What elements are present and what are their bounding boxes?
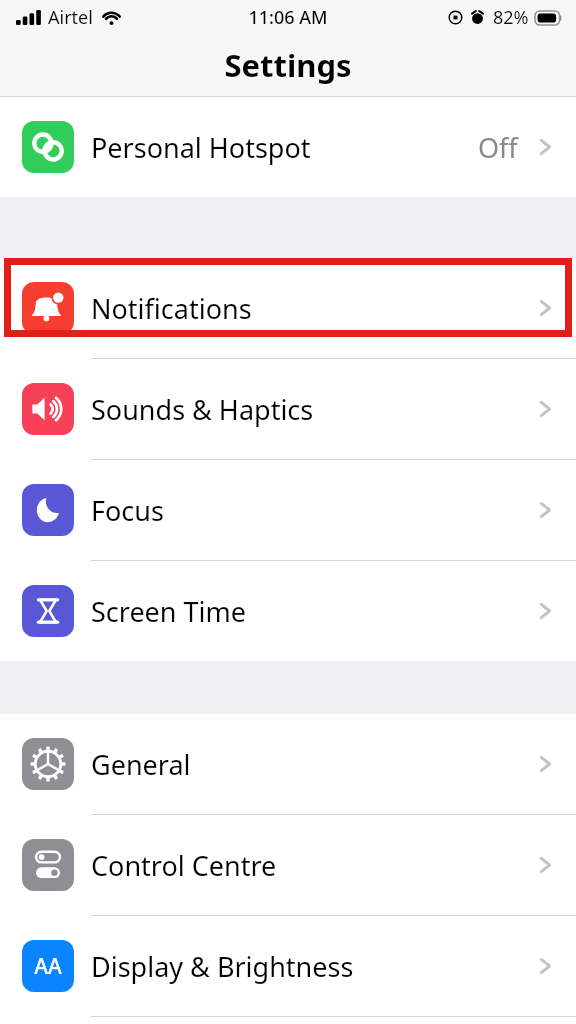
staticText: Personal Hotspot xyxy=(91,129,478,166)
staticText: Sounds & Haptics xyxy=(91,391,534,428)
staticText: Settings xyxy=(224,44,352,86)
button[interactable]: Sounds & Haptics xyxy=(0,359,576,460)
staticText: AA xyxy=(34,952,62,981)
button[interactable]: Screen Time xyxy=(0,561,576,661)
button[interactable]: Personal Hotspot xyxy=(0,97,576,197)
staticText: 82% xyxy=(493,5,529,30)
staticText: Off xyxy=(478,129,518,166)
staticText: Focus xyxy=(91,492,534,529)
button[interactable]: Control Centre xyxy=(0,815,576,916)
staticText: Airtel xyxy=(48,5,93,30)
button[interactable]: General xyxy=(0,714,576,815)
staticText: Control Centre xyxy=(91,847,534,884)
button[interactable]: Focus xyxy=(0,460,576,561)
staticText: Notifications xyxy=(91,290,534,327)
staticText: General xyxy=(91,746,534,783)
button[interactable]: AA xyxy=(0,916,576,1017)
staticText: Screen Time xyxy=(91,593,534,630)
button[interactable]: Notifications xyxy=(0,258,576,359)
staticText: 11:06 AM xyxy=(248,5,328,30)
staticText: Display & Brightness xyxy=(91,948,534,985)
